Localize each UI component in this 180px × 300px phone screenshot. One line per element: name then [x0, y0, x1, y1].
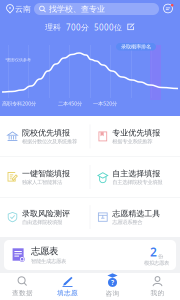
button[interactable]: ?: [90, 275, 135, 298]
staticText: 份: [158, 253, 163, 260]
staticText: 录取概率排名: [121, 43, 151, 50]
button[interactable]: 查数据: [0, 276, 45, 297]
staticText: 独家人工智能算法: [22, 179, 62, 185]
staticText: 志愿精选工具: [112, 209, 160, 218]
button[interactable]: 志愿表: [4, 240, 176, 270]
staticText: 高职专科200分: [2, 100, 36, 107]
button[interactable]: 录取风险测评: [0, 209, 90, 226]
staticText: 5000位: [94, 22, 122, 33]
button[interactable]: 志愿精选工具: [90, 209, 180, 226]
staticText: 院校优先填报: [22, 128, 70, 138]
staticText: 志愿表: [31, 245, 58, 257]
staticText: 自主选择填报: [112, 169, 160, 178]
staticText: 根据分数位次及系统推荐: [22, 138, 77, 145]
button[interactable]: 自主选择填报: [90, 169, 180, 185]
staticText: 查数据: [12, 289, 33, 297]
staticText: 一键智能填报: [22, 169, 70, 178]
button[interactable]: 填志愿: [45, 276, 90, 297]
button[interactable]: 一键智能填报: [0, 169, 90, 185]
staticText: 填志愿: [57, 289, 78, 297]
staticText: 志愿语系整合: [112, 219, 142, 226]
staticText: 700分: [66, 22, 89, 33]
staticText: 根据专业系统推荐: [112, 138, 152, 145]
staticText: 录取风险测评: [22, 209, 70, 218]
button[interactable]: 院校优先填报: [0, 128, 90, 145]
button[interactable]: 专业优先填报: [90, 128, 180, 145]
staticText: 云南: [15, 4, 31, 14]
staticText: 找学校、查专业: [49, 4, 105, 14]
staticText: 自主选择院校专业填报: [112, 179, 162, 185]
staticText: 二本450分: [58, 100, 82, 107]
button[interactable]: 录取概率排名: [116, 43, 156, 50]
staticText: 一本520分: [93, 100, 117, 107]
button[interactable]: Messages: [162, 3, 174, 15]
staticText: 自由选择院校填报: [22, 219, 62, 226]
staticText: 智能生成志愿表: [31, 258, 66, 265]
staticText: 模拟志愿表: [144, 260, 169, 266]
staticText: ?: [111, 278, 114, 287]
staticText: *图形仅供参考: [5, 57, 31, 62]
button[interactable]: Edit score: [127, 23, 135, 31]
button[interactable]: 找学校、查专业: [34, 3, 159, 15]
staticText: 我的: [150, 289, 164, 297]
staticText: 咨询: [105, 289, 119, 298]
button[interactable]: 我的: [135, 276, 180, 297]
button[interactable]: 云南: [6, 4, 31, 14]
staticText: 专业优先填报: [112, 128, 160, 138]
staticText: 2: [150, 244, 157, 260]
staticText: 理科: [45, 22, 61, 32]
